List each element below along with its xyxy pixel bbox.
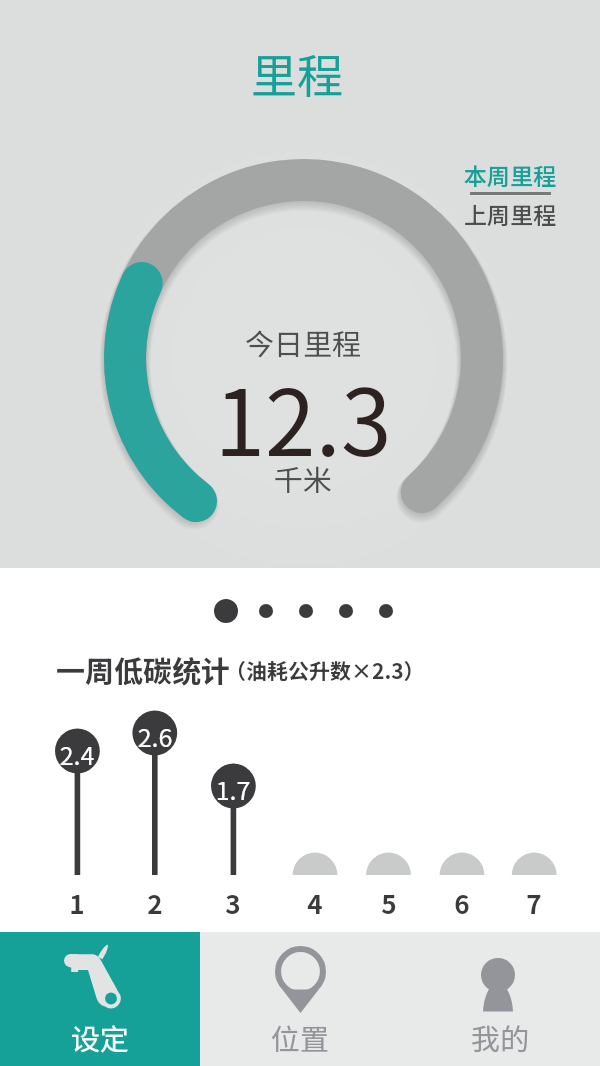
button[interactable]: Page 4 (339, 604, 353, 618)
staticText: 2.4 (47, 736, 107, 772)
button[interactable]: Location (200, 932, 400, 1066)
staticText: 12.3 (143, 350, 463, 482)
staticText: 6 (432, 884, 492, 922)
staticText: 4 (285, 884, 345, 922)
button[interactable]: Page 1 (214, 599, 238, 623)
staticText: 我的 (400, 1016, 600, 1058)
button[interactable]: 本周里程 (462, 158, 558, 191)
staticText: 上周里程 (462, 197, 558, 230)
staticText: 5 (359, 884, 419, 922)
button[interactable]: Page 2 (259, 604, 273, 618)
staticText: 位置 (200, 1016, 400, 1058)
staticText: 7 (504, 884, 564, 922)
button[interactable]: Settings (0, 932, 200, 1066)
staticText: 一周低碳统计 (56, 648, 231, 690)
staticText: 3 (203, 884, 263, 922)
staticText: （油耗公升数×2.3） (225, 655, 425, 685)
staticText: 2.6 (125, 718, 185, 754)
button[interactable]: Profile (400, 932, 600, 1066)
staticText: 设定 (0, 1016, 200, 1058)
staticText: 1 (47, 884, 107, 922)
button[interactable]: 上周里程 (462, 197, 558, 230)
staticText: 本周里程 (462, 158, 558, 191)
button[interactable]: Page 5 (379, 604, 393, 618)
staticText: 里程 (187, 40, 407, 107)
staticText: 今日里程 (173, 321, 433, 363)
button[interactable]: Page 3 (299, 604, 313, 618)
staticText: 2 (125, 884, 185, 922)
staticText: 1.7 (203, 771, 263, 807)
staticText: 千米 (203, 457, 403, 499)
